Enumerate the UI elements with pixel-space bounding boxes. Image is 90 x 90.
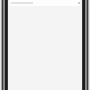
button[interactable]: Status <box>0 0 90 6</box>
other: Status <box>78 2 83 4</box>
